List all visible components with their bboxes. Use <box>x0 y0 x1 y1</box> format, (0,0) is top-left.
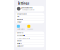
staticText: Privacy & Security <box>17 37 30 39</box>
staticText: Bluetooth <box>17 18 23 20</box>
staticText: Jane Appleseed <box>22 7 33 9</box>
staticText: General <box>17 32 23 34</box>
button[interactable]: Bluetooth <box>16 18 44 21</box>
button[interactable]: Sounds <box>27 25 33 30</box>
staticText: Display <box>17 40 22 42</box>
button[interactable]: Notifications <box>17 25 25 30</box>
button[interactable]: Battery <box>16 42 44 45</box>
staticText: Settings <box>18 2 29 5</box>
button[interactable]: Airplane Mode <box>16 13 44 15</box>
staticText: Airplane Mode <box>17 13 27 15</box>
staticText: Sounds <box>27 28 33 30</box>
staticText: Cellular <box>17 21 22 23</box>
staticText: Accessibility <box>17 35 25 36</box>
button[interactable]: Cellular <box>16 21 44 23</box>
button[interactable]: General <box>16 32 44 34</box>
button[interactable]: Wi-Fi <box>16 15 44 18</box>
button[interactable]: Display <box>16 40 44 42</box>
staticText: Wi-Fi <box>17 16 19 18</box>
staticText: Apple ID, iCloud, Media <box>22 9 35 11</box>
button[interactable]: Privacy & Security <box>16 37 44 39</box>
staticText: Notifications <box>17 28 25 30</box>
button[interactable]: Accessibility <box>16 34 44 37</box>
staticText: Battery <box>17 42 22 44</box>
staticText: Wallpaper <box>17 45 24 47</box>
button[interactable]: Wallpaper <box>16 45 44 47</box>
